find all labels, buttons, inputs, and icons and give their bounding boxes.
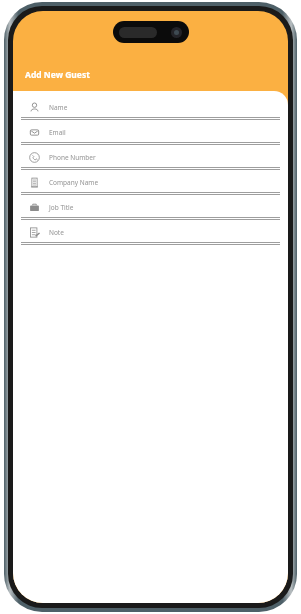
staticText: Company Name (49, 178, 99, 187)
button[interactable]: Phone Number (13, 147, 288, 172)
button[interactable]: Company Name (13, 172, 288, 197)
button[interactable]: Note (13, 222, 288, 247)
staticText: Add New Guest (25, 69, 90, 81)
staticText: Note (49, 228, 64, 237)
button[interactable]: Job Title (13, 197, 288, 222)
staticText: Name (49, 103, 68, 112)
staticText: Phone Number (49, 153, 96, 162)
staticText: Job Title (49, 203, 74, 212)
staticText: Email (49, 128, 66, 137)
button[interactable]: Email (13, 122, 288, 147)
button[interactable]: Name (13, 97, 288, 122)
